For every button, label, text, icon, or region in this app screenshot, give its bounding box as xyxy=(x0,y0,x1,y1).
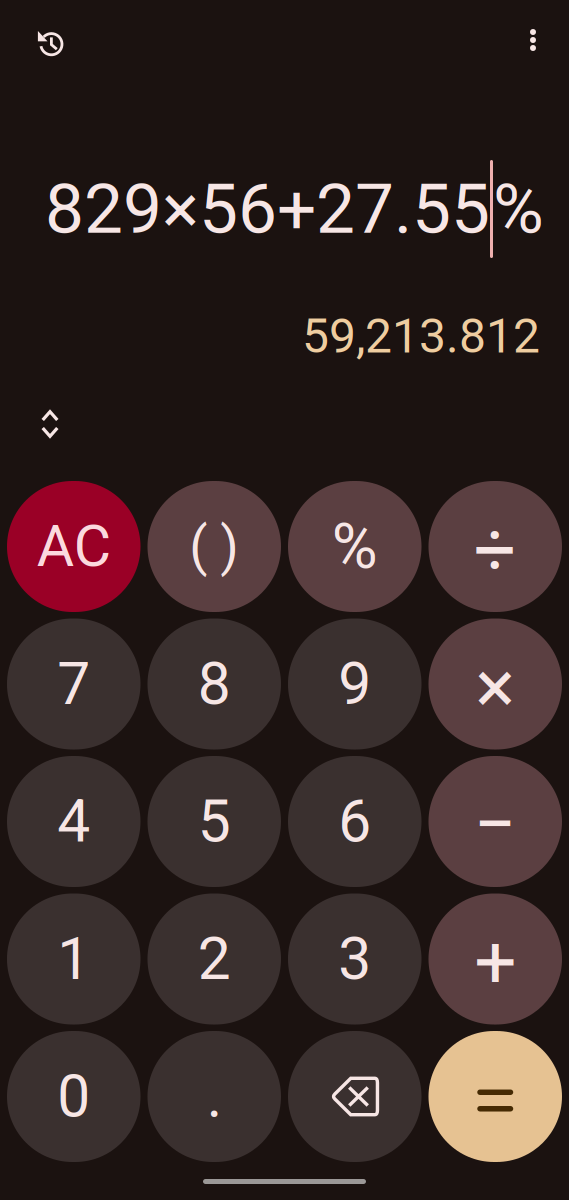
staticText: 59,213.812 xyxy=(302,308,540,364)
staticText: ÷ xyxy=(474,506,517,593)
staticText: 7 xyxy=(57,650,90,718)
staticText: . xyxy=(207,1062,222,1131)
button[interactable]: 2 xyxy=(147,893,281,1024)
button[interactable]: 5 xyxy=(147,756,281,887)
button[interactable]: − xyxy=(428,756,562,887)
button[interactable]: 4 xyxy=(7,756,140,887)
button[interactable]: + xyxy=(428,893,562,1024)
button[interactable]: 7 xyxy=(7,618,140,749)
staticText: 8 xyxy=(198,650,231,718)
button[interactable]: ( ) xyxy=(147,481,281,612)
staticText: × xyxy=(475,643,515,731)
button[interactable]: ÷ xyxy=(428,481,562,612)
button[interactable]: 6 xyxy=(288,756,421,887)
button[interactable]: AC xyxy=(7,481,140,612)
button[interactable]: 9 xyxy=(288,618,421,749)
button[interactable]: Equals xyxy=(428,1031,562,1162)
staticText: 3 xyxy=(338,925,371,993)
staticText: + xyxy=(474,918,516,1006)
staticText: 2 xyxy=(198,925,231,993)
button[interactable]: Expand xyxy=(24,401,76,447)
button[interactable]: × xyxy=(428,618,562,749)
button[interactable]: % xyxy=(288,481,421,612)
staticText: 4 xyxy=(57,787,90,856)
button[interactable]: 8 xyxy=(147,618,281,749)
staticText: 829×56+27.55 xyxy=(45,168,490,250)
button[interactable]: History xyxy=(25,18,75,68)
button[interactable]: 0 xyxy=(7,1031,140,1162)
staticText: % xyxy=(493,168,544,250)
button[interactable]: . xyxy=(147,1031,281,1162)
staticText: 5 xyxy=(198,787,231,856)
button[interactable]: 1 xyxy=(7,893,140,1024)
button[interactable]: Backspace xyxy=(288,1031,421,1162)
staticText: 9 xyxy=(338,650,371,718)
staticText: 1 xyxy=(57,925,90,993)
button[interactable]: More options xyxy=(513,18,553,68)
button[interactable]: 3 xyxy=(288,893,421,1024)
staticText: 6 xyxy=(338,787,371,856)
staticText: 0 xyxy=(57,1062,90,1131)
staticText: − xyxy=(474,781,517,868)
staticText: ( ) xyxy=(189,515,239,578)
staticText: AC xyxy=(37,513,111,580)
staticText: % xyxy=(332,510,378,583)
